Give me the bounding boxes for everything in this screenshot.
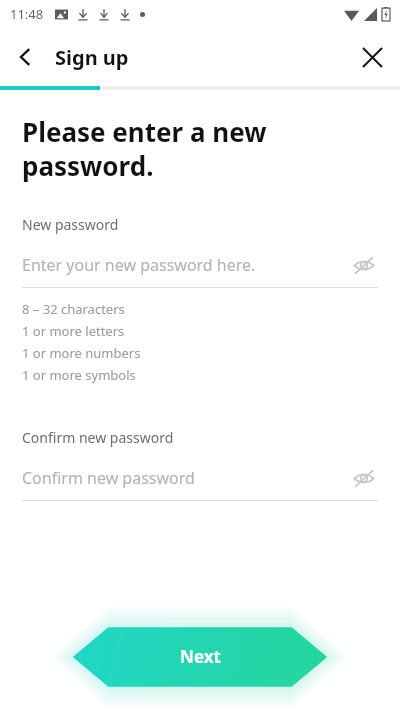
button[interactable]: Close xyxy=(352,37,392,77)
staticText: 1 or more letters xyxy=(22,322,125,340)
button[interactable]: Next xyxy=(52,608,348,704)
staticText: Confirm new password xyxy=(22,467,195,489)
staticText: Enter your new password here. xyxy=(22,254,256,276)
staticText: 11:48 xyxy=(10,5,44,23)
staticText: Next xyxy=(180,645,221,668)
button[interactable]: Enter your new password here. xyxy=(0,250,400,280)
staticText: Please enter a new password. xyxy=(22,114,378,183)
button[interactable]: Confirm new password xyxy=(0,463,400,493)
staticText: Sign up xyxy=(55,44,129,71)
staticText: Confirm new password xyxy=(22,428,174,447)
staticText: New password xyxy=(22,215,119,234)
staticText: 1 or more numbers xyxy=(22,344,141,362)
button[interactable]: Show password xyxy=(350,251,378,279)
button[interactable]: Show password xyxy=(350,464,378,492)
staticText: 8 – 32 characters xyxy=(22,300,125,318)
staticText: 1 or more symbols xyxy=(22,366,136,384)
button[interactable]: Back xyxy=(8,39,44,75)
